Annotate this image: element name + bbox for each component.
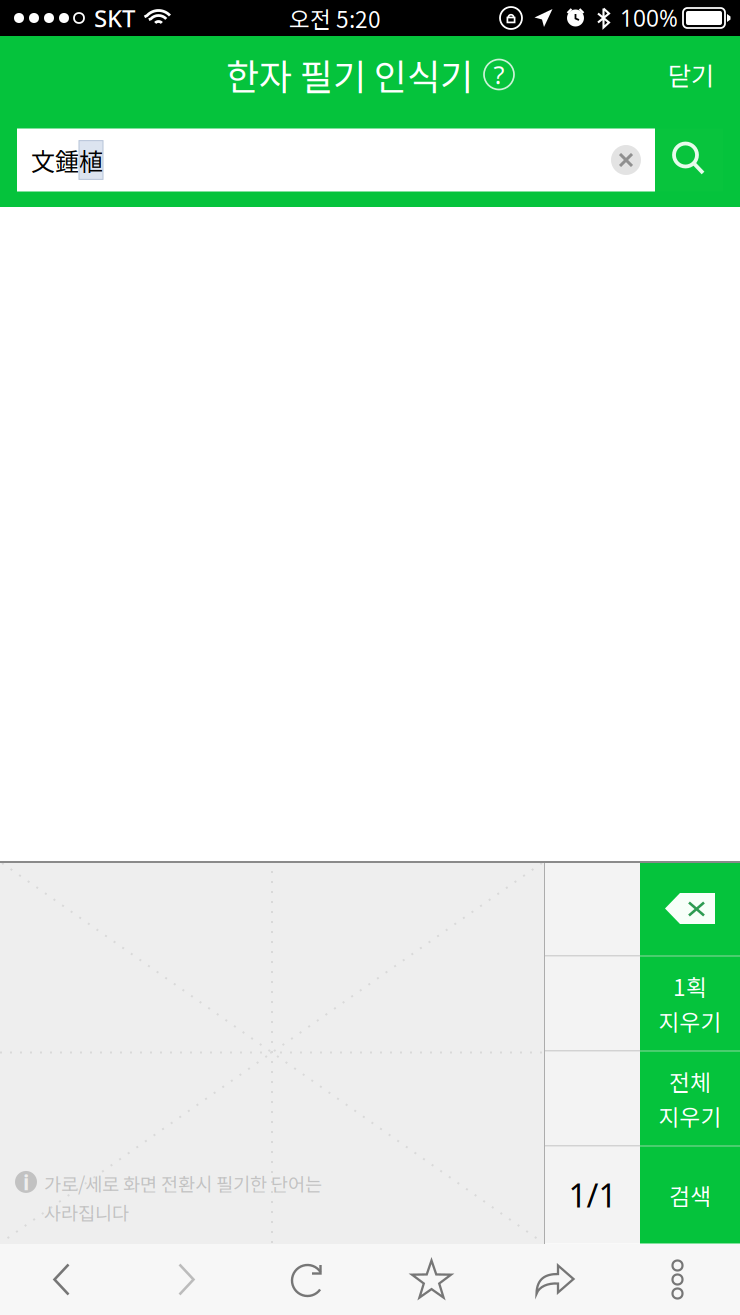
button[interactable]: 뒤로 bbox=[1, 1244, 124, 1315]
staticText: i bbox=[23, 1168, 29, 1196]
button[interactable]: 1획 bbox=[640, 956, 740, 1050]
button[interactable]: 전체 bbox=[640, 1051, 740, 1145]
staticText: 1/1 bbox=[568, 1174, 616, 1216]
staticText: 사라집니다 bbox=[44, 1199, 129, 1226]
staticText: 文鍾 bbox=[31, 143, 79, 177]
staticText: 검색 bbox=[669, 1179, 711, 1211]
button[interactable]: 앞으로 bbox=[124, 1244, 247, 1315]
button[interactable]: 도움말 bbox=[484, 59, 514, 89]
staticText: 100% bbox=[620, 3, 678, 33]
staticText: 오전 5:20 bbox=[289, 2, 381, 34]
button[interactable]: 새로고침 bbox=[247, 1244, 370, 1315]
staticText: 지우기 bbox=[658, 1004, 721, 1037]
button[interactable]: 즐겨찾기 bbox=[370, 1244, 493, 1315]
staticText: 植 bbox=[79, 143, 103, 177]
staticText: 1획 bbox=[673, 970, 707, 1002]
button[interactable]: 검색 bbox=[640, 1146, 740, 1243]
staticText: 닫기 bbox=[668, 56, 714, 93]
button[interactable]: 닫기 bbox=[648, 42, 734, 107]
staticText: 지우기 bbox=[658, 1099, 721, 1132]
staticText: 한자 필기 인식기 bbox=[226, 48, 473, 100]
staticText: ? bbox=[493, 58, 504, 91]
button[interactable] bbox=[545, 861, 640, 955]
button[interactable]: 1/1 bbox=[545, 1146, 640, 1243]
button[interactable]: 한 글자 지우기 bbox=[640, 861, 740, 955]
staticText: SKT bbox=[94, 2, 135, 34]
button[interactable]: 더보기 bbox=[616, 1244, 739, 1315]
button[interactable]: 검색 bbox=[655, 128, 723, 191]
button[interactable]: 지우기 bbox=[600, 134, 652, 186]
staticText: 전체 bbox=[669, 1065, 711, 1097]
staticText: 가로/세로 화면 전환시 필기한 단어는 bbox=[44, 1170, 322, 1197]
button[interactable]: 공유 bbox=[493, 1244, 616, 1315]
button[interactable] bbox=[545, 1051, 640, 1145]
